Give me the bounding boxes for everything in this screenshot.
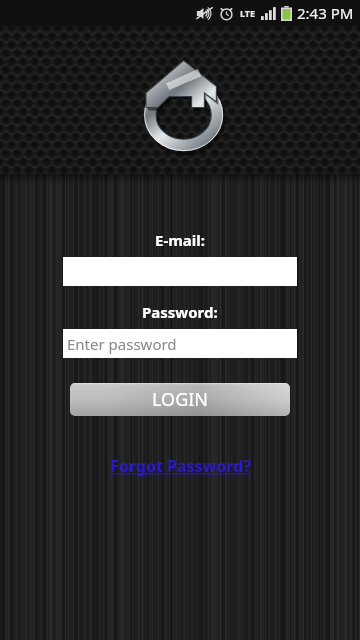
staticText: Enter password	[67, 334, 177, 354]
button[interactable]: LOGIN	[70, 383, 290, 416]
staticText: Forgot Password?	[110, 455, 251, 477]
staticText: LTE	[240, 7, 256, 19]
button[interactable]: Forgot Password?	[106, 453, 255, 479]
staticText: LOGIN	[152, 387, 209, 412]
staticText: 2:43 PM	[297, 3, 354, 23]
staticText: Password:	[142, 302, 218, 322]
staticText: E-mail:	[155, 230, 205, 250]
button[interactable]: Enter password	[63, 329, 297, 358]
